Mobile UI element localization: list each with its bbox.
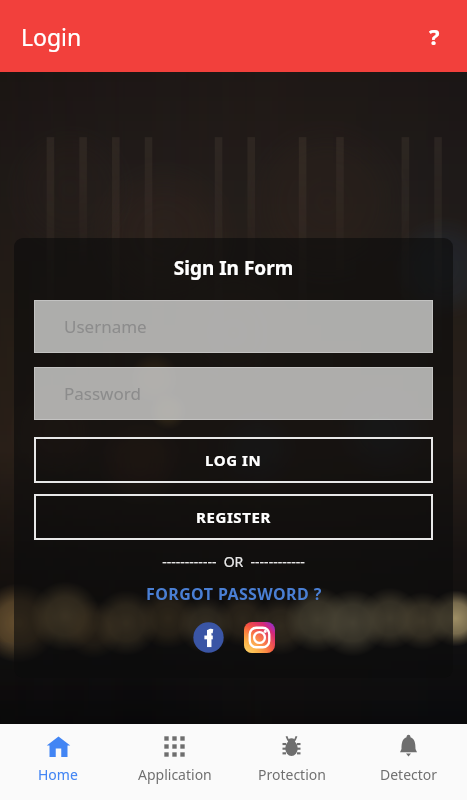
other: Detector xyxy=(396,734,421,759)
button[interactable]: Application xyxy=(116,724,233,800)
button[interactable]: Detector xyxy=(350,724,467,800)
staticText: Sign In Form xyxy=(34,255,433,281)
staticText: Login xyxy=(21,21,82,52)
button[interactable]: REGISTER xyxy=(34,494,433,540)
staticText: Application xyxy=(138,765,212,784)
staticText: FORGOT PASSWORD ? xyxy=(146,583,322,605)
staticText: ------------ OR ------------ xyxy=(34,552,433,571)
button[interactable]: Sign in with Facebook xyxy=(192,621,225,654)
staticText: Home xyxy=(38,765,78,784)
other: Home xyxy=(46,734,71,759)
button[interactable]: Password xyxy=(34,367,433,420)
other: Application xyxy=(162,734,187,759)
staticText: LOG IN xyxy=(205,450,262,470)
button[interactable]: Sign in with Instagram xyxy=(244,622,275,653)
staticText: Protection xyxy=(258,765,326,784)
button[interactable]: Home xyxy=(0,724,116,800)
button[interactable]: Protection xyxy=(233,724,350,800)
button[interactable]: Username xyxy=(34,300,433,353)
button[interactable]: Help xyxy=(411,13,457,59)
button[interactable]: LOG IN xyxy=(34,437,433,483)
staticText: Detector xyxy=(380,765,438,784)
other: Protection xyxy=(279,734,304,759)
button[interactable]: FORGOT PASSWORD ? xyxy=(34,583,433,605)
staticText: Username xyxy=(64,315,147,338)
staticText: ? xyxy=(429,21,440,51)
staticText: REGISTER xyxy=(196,507,271,527)
staticText: Password xyxy=(64,382,141,405)
